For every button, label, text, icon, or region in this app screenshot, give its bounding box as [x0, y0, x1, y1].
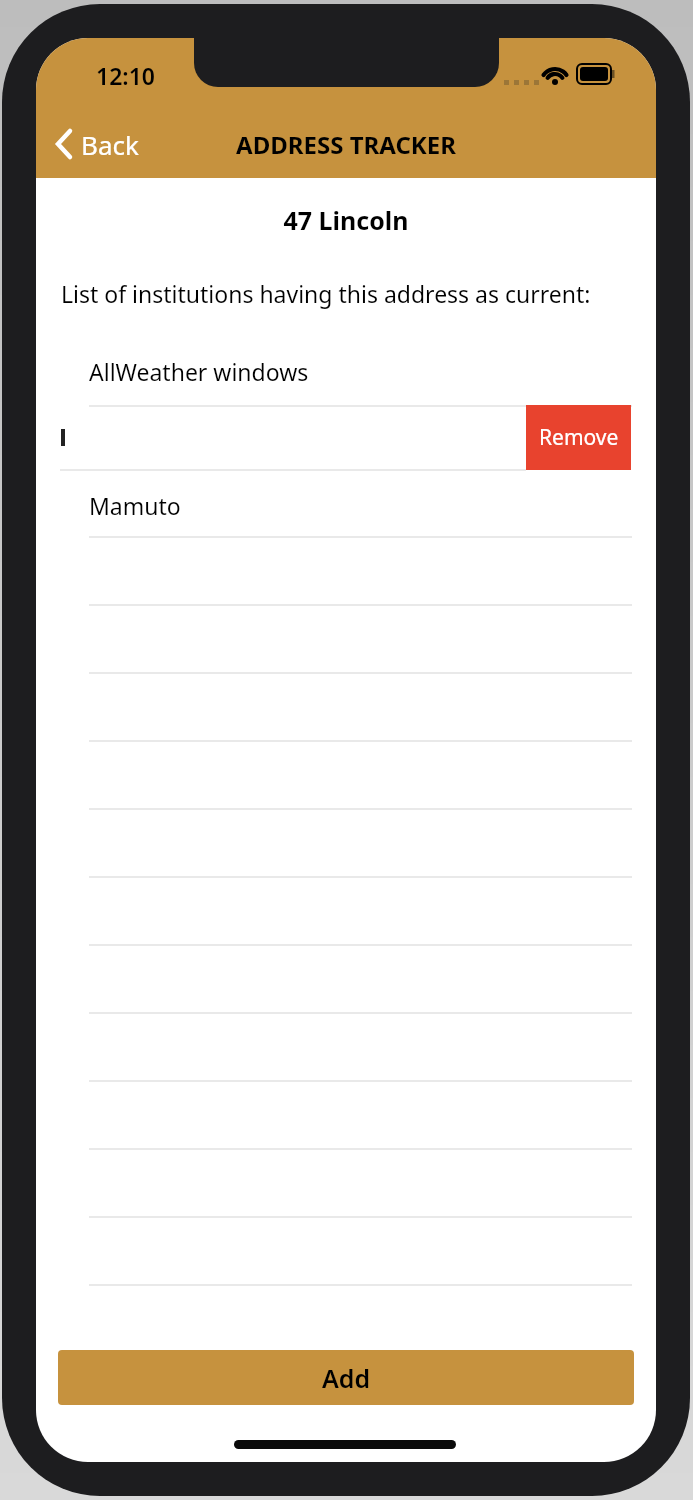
staticText: Add — [322, 1361, 371, 1395]
staticText: List of institutions having this address… — [61, 278, 591, 309]
button[interactable]: Add — [58, 1350, 634, 1405]
staticText: Mamuto — [89, 490, 181, 521]
staticText: ADDRESS TRACKER — [36, 128, 656, 161]
button[interactable]: AllWeather windows — [89, 337, 632, 405]
button[interactable]: Remove — [526, 405, 631, 470]
staticText: AllWeather windows — [89, 356, 309, 387]
button[interactable]: Mamuto — [89, 472, 632, 538]
button[interactable]: Back — [46, 118, 147, 170]
staticText: Back — [81, 127, 139, 162]
staticText: Remove — [539, 423, 619, 452]
staticText: 47 Lincoln — [36, 203, 656, 237]
staticText: 12:10 — [96, 60, 155, 91]
